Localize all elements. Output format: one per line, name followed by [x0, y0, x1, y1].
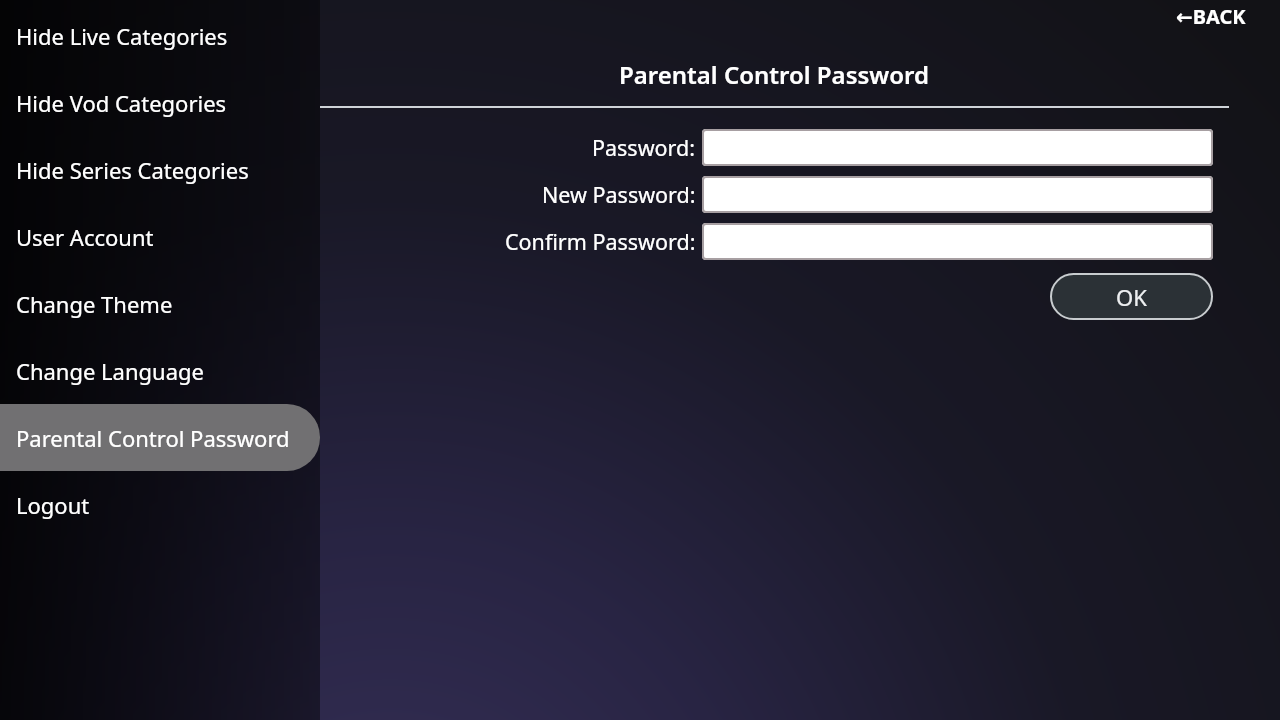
- button[interactable]: Hide Vod Categories: [0, 69, 320, 136]
- staticText: OK: [1116, 282, 1147, 312]
- button[interactable]: User Account: [0, 203, 320, 270]
- staticText: ←BACK: [1176, 3, 1246, 30]
- button[interactable]: Hide Series Categories: [0, 136, 320, 203]
- button[interactable]: ←BACK: [1176, 3, 1246, 30]
- button[interactable]: [702, 176, 1213, 213]
- staticText: Hide Series Categories: [16, 155, 249, 185]
- button[interactable]: Logout: [0, 471, 320, 538]
- button[interactable]: [702, 129, 1213, 166]
- button[interactable]: [702, 223, 1213, 260]
- staticText: User Account: [16, 222, 154, 252]
- staticText: Change Language: [16, 356, 204, 386]
- staticText: Hide Live Categories: [16, 21, 228, 51]
- staticText: Change Theme: [16, 289, 173, 319]
- staticText: New Password:: [542, 180, 696, 209]
- staticText: Parental Control Password: [619, 58, 930, 91]
- button[interactable]: Parental Control Password: [0, 404, 320, 471]
- button[interactable]: Change Theme: [0, 270, 320, 337]
- staticText: Confirm Password:: [505, 227, 696, 256]
- staticText: Logout: [16, 490, 90, 520]
- staticText: Password:: [592, 133, 696, 162]
- button[interactable]: Change Language: [0, 337, 320, 404]
- staticText: Parental Control Password: [16, 423, 290, 453]
- button[interactable]: Hide Live Categories: [0, 2, 320, 69]
- button[interactable]: OK: [1050, 273, 1213, 320]
- staticText: Hide Vod Categories: [16, 88, 227, 118]
